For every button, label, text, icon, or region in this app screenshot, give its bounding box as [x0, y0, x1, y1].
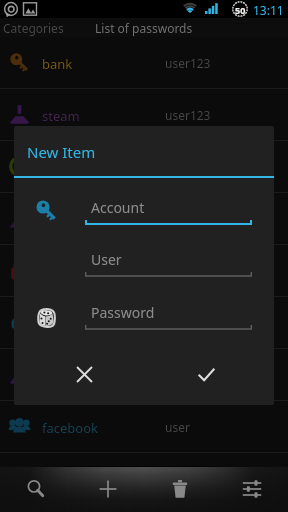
staticText: User — [91, 250, 122, 269]
staticText: facebook — [42, 419, 99, 437]
staticText: cloud — [42, 315, 76, 333]
button[interactable]: facebook — [0, 401, 288, 453]
staticText: 50 — [235, 4, 246, 16]
staticText: bank — [42, 55, 73, 73]
staticText: user123 — [165, 55, 211, 71]
staticText: work — [42, 159, 73, 177]
button[interactable]: Search — [0, 466, 72, 512]
button[interactable]: music — [0, 193, 288, 245]
button[interactable]: List of passwords — [86, 18, 202, 37]
staticText: New Item — [27, 142, 96, 162]
staticText: user — [165, 263, 190, 279]
staticText: user — [165, 419, 190, 435]
staticText: games — [42, 367, 84, 385]
staticText: 13:11 — [253, 2, 284, 18]
staticText: Account — [91, 198, 145, 217]
button[interactable]: Categories — [0, 18, 66, 37]
button[interactable]: cloud — [0, 297, 288, 349]
button[interactable]: work — [0, 141, 288, 193]
button[interactable]: Cancel — [64, 354, 104, 394]
button[interactable]: games — [0, 349, 288, 401]
staticText: user — [165, 315, 190, 331]
button[interactable]: Confirm — [186, 354, 226, 394]
staticText: user123 — [165, 107, 211, 123]
button[interactable]: Delete — [144, 466, 216, 512]
staticText: Password — [91, 303, 155, 322]
button[interactable]: Add — [72, 466, 144, 512]
button[interactable]: Account — [85, 196, 252, 226]
button[interactable]: steam — [0, 89, 288, 141]
staticText: user — [165, 211, 190, 227]
staticText: List of passwords — [95, 20, 193, 36]
button[interactable]: bank — [0, 37, 288, 89]
button[interactable]: mail — [0, 245, 288, 297]
button[interactable]: User — [85, 248, 252, 278]
button: New Item — [14, 126, 274, 405]
button[interactable]: Settings — [216, 466, 288, 512]
button[interactable]: Password — [85, 301, 252, 331]
staticText: Categories — [3, 20, 64, 36]
staticText: steam — [42, 107, 80, 125]
staticText: music — [42, 211, 79, 229]
